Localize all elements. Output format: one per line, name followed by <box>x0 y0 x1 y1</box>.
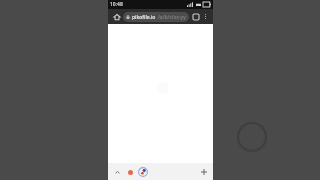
staticText: /a/b/c/xx-yy <box>158 14 186 21</box>
button[interactable]: Home <box>111 11 122 22</box>
button[interactable]: Record <box>125 167 135 177</box>
staticText: pikofile.io <box>132 14 156 21</box>
button[interactable]: Add <box>198 166 209 177</box>
staticText: 10:48 <box>110 1 123 8</box>
button[interactable]: More options <box>201 12 210 21</box>
button[interactable]: pikofile.io <box>123 12 189 22</box>
button[interactable]: Expand <box>112 167 122 177</box>
button[interactable]: Switch tabs <box>190 11 201 22</box>
button[interactable]: Pointer <box>137 166 149 178</box>
